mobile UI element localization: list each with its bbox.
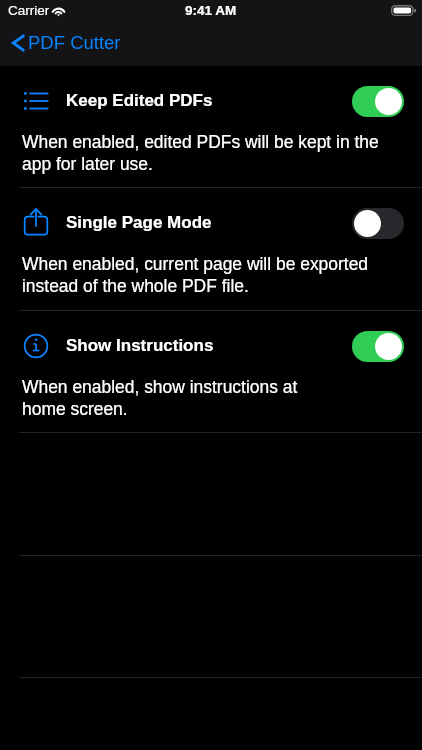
staticText: Carrier (8, 3, 50, 18)
staticText: Show Instructions (66, 336, 214, 355)
staticText: When enabled, edited PDFs will be kept i… (22, 132, 422, 173)
other: Back (11, 34, 25, 52)
staticText: Single Page Mode (66, 213, 212, 232)
staticText: When enabled, current page will be expor… (22, 254, 422, 295)
button[interactable]: Back (8, 30, 124, 55)
button[interactable]: Toggle on (352, 86, 404, 117)
staticText: 9:41 AM (185, 3, 237, 18)
button[interactable]: Show Instructions (0, 311, 422, 434)
button[interactable]: Single Page Mode (0, 188, 422, 311)
staticText: When enabled, show instructions at home … (22, 377, 422, 418)
button[interactable]: Toggle on (352, 331, 404, 362)
button[interactable]: Toggle off (352, 208, 404, 239)
staticText: PDF Cutter (28, 32, 121, 53)
staticText: Keep Edited PDFs (66, 91, 213, 110)
button[interactable]: Keep Edited PDFs (0, 66, 422, 189)
